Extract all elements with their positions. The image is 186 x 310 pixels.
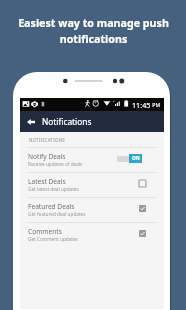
staticText: PM xyxy=(151,101,161,108)
staticText: 11:45 xyxy=(132,100,151,110)
staticText: Notifications xyxy=(42,116,92,127)
button[interactable]: Checked xyxy=(119,227,144,243)
button[interactable]: Notify Deals xyxy=(20,148,164,172)
button[interactable]: Unchecked xyxy=(119,177,144,193)
button[interactable]: Checked xyxy=(119,202,144,218)
button[interactable]: Back xyxy=(20,111,42,132)
button[interactable]: Featured Deals xyxy=(20,198,164,222)
staticText: ON xyxy=(132,155,140,162)
staticText: Receive updates of deals xyxy=(28,161,83,167)
button[interactable]: Latest Deals xyxy=(20,173,164,197)
staticText: Get Comment updates xyxy=(28,236,78,242)
staticText: Featured Deals xyxy=(28,202,75,211)
staticText: Latest Deals xyxy=(28,177,66,186)
staticText: Comments xyxy=(28,227,62,236)
staticText: Get latest deal updates xyxy=(28,186,79,192)
staticText: Notify Deals xyxy=(28,152,66,161)
staticText: Get featured deal updates xyxy=(28,211,86,217)
staticText: Easiest way to manage push notifications xyxy=(18,16,169,46)
button[interactable]: Toggle on xyxy=(119,156,144,165)
button[interactable]: Comments xyxy=(20,223,164,247)
staticText: NOTIFICATIONS xyxy=(29,137,65,143)
